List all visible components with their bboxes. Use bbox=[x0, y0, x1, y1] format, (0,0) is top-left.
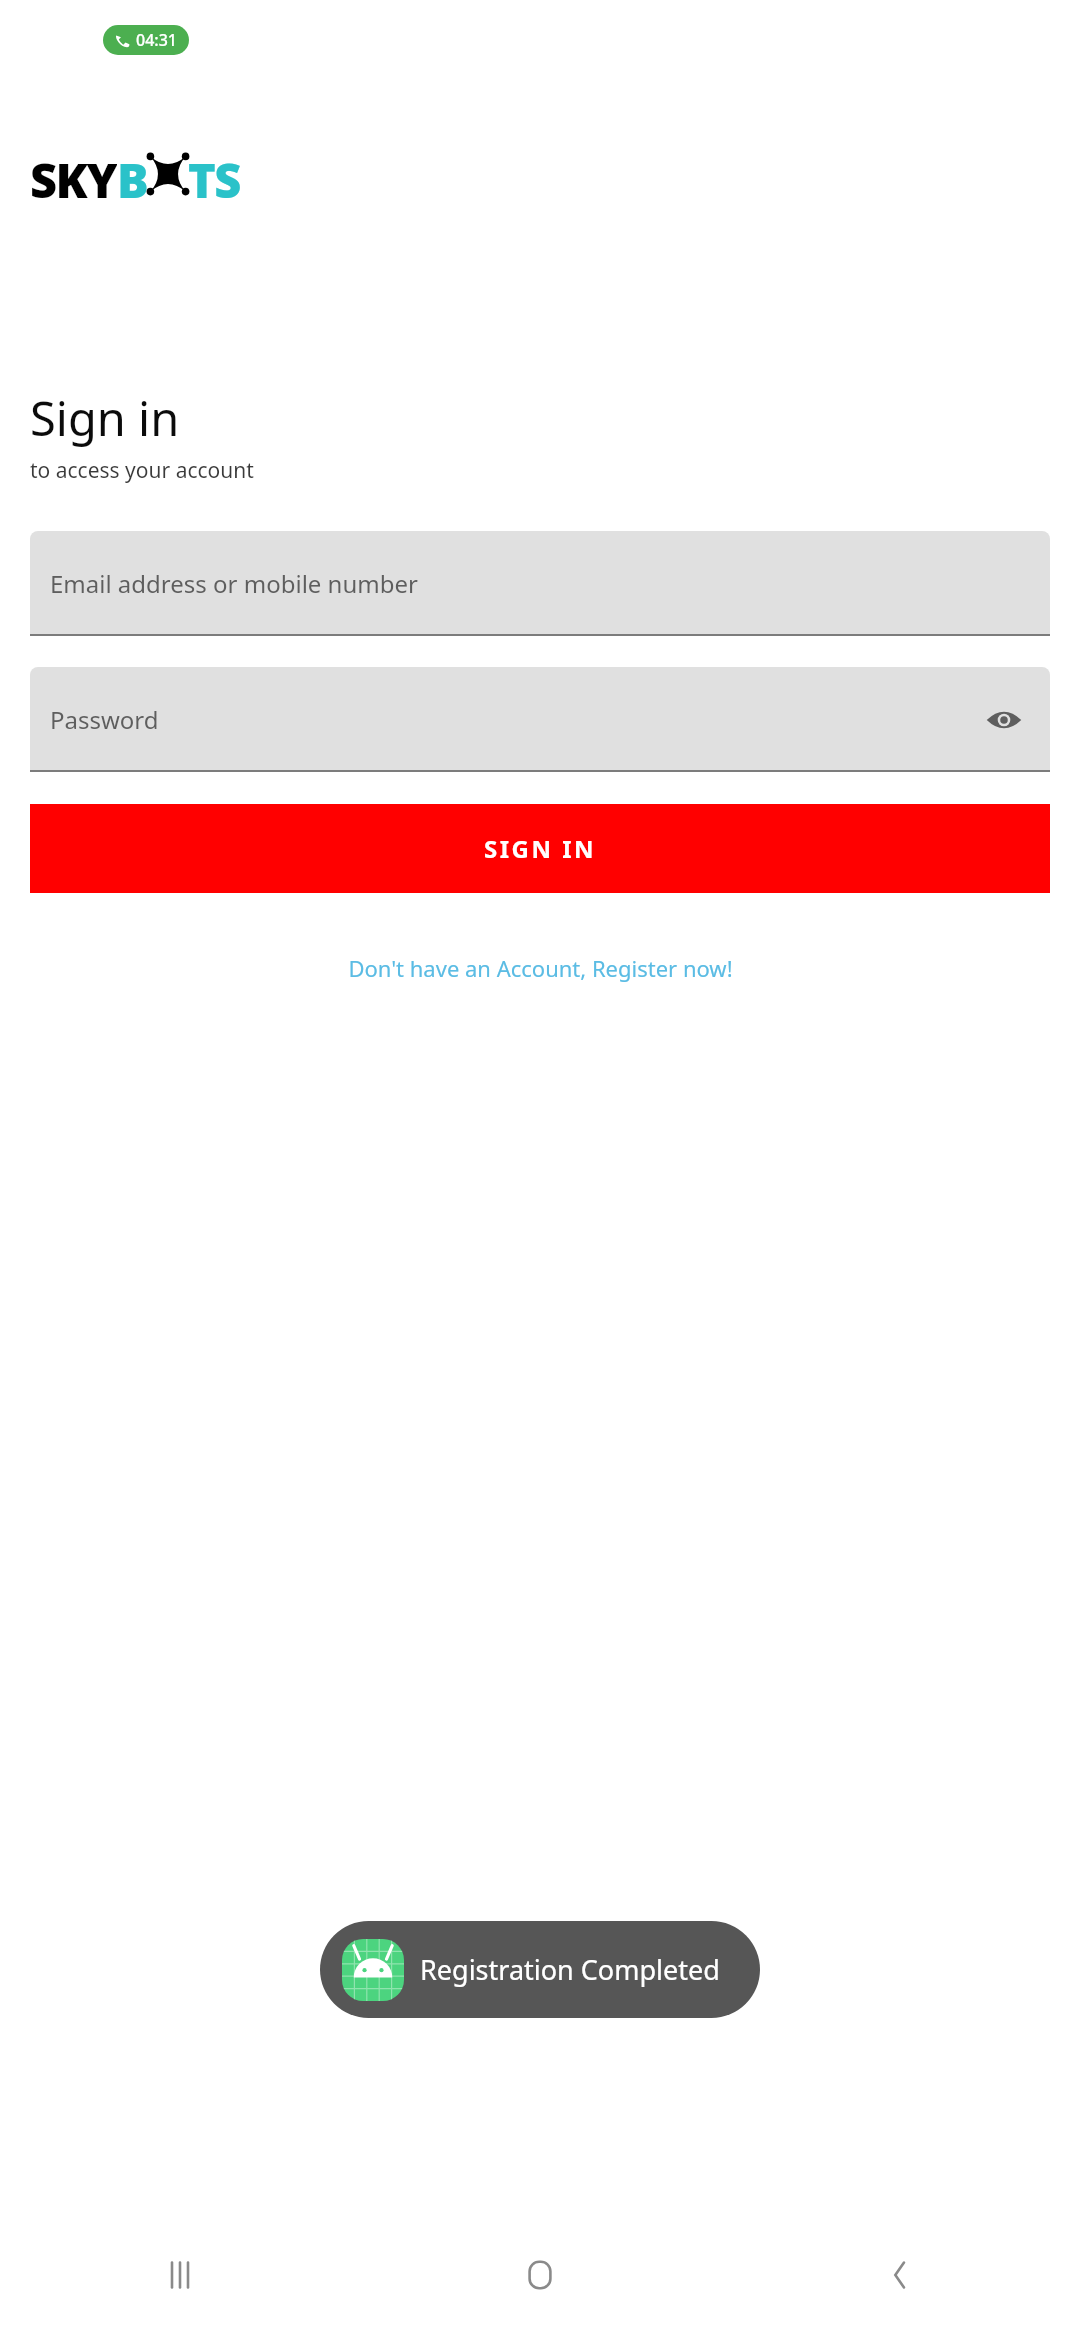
button[interactable]: SIGN IN bbox=[30, 804, 1050, 893]
staticText: SKY bbox=[30, 148, 117, 200]
staticText: Sign in bbox=[30, 386, 180, 450]
staticText: Registration Completed bbox=[420, 1951, 720, 1988]
button[interactable]: Recent apps bbox=[0, 2210, 360, 2340]
staticText: Don't have an Account, Register now! bbox=[348, 953, 733, 983]
button[interactable]: Back bbox=[720, 2210, 1080, 2340]
staticText: Password bbox=[50, 703, 159, 736]
staticText: Email address or mobile number bbox=[50, 567, 418, 600]
staticText: TS bbox=[188, 148, 240, 200]
button[interactable]: Password bbox=[30, 667, 1050, 772]
button[interactable]: Don't have an Account, Register now! bbox=[30, 953, 1050, 983]
staticText: B bbox=[117, 148, 148, 200]
staticText: 04:31 bbox=[136, 29, 177, 51]
button[interactable]: Home bbox=[360, 2210, 720, 2340]
button[interactable]: Show password bbox=[978, 694, 1030, 746]
button[interactable]: Email address or mobile number bbox=[30, 531, 1050, 636]
staticText: SIGN IN bbox=[484, 832, 597, 865]
staticText: to access your account bbox=[30, 456, 254, 485]
